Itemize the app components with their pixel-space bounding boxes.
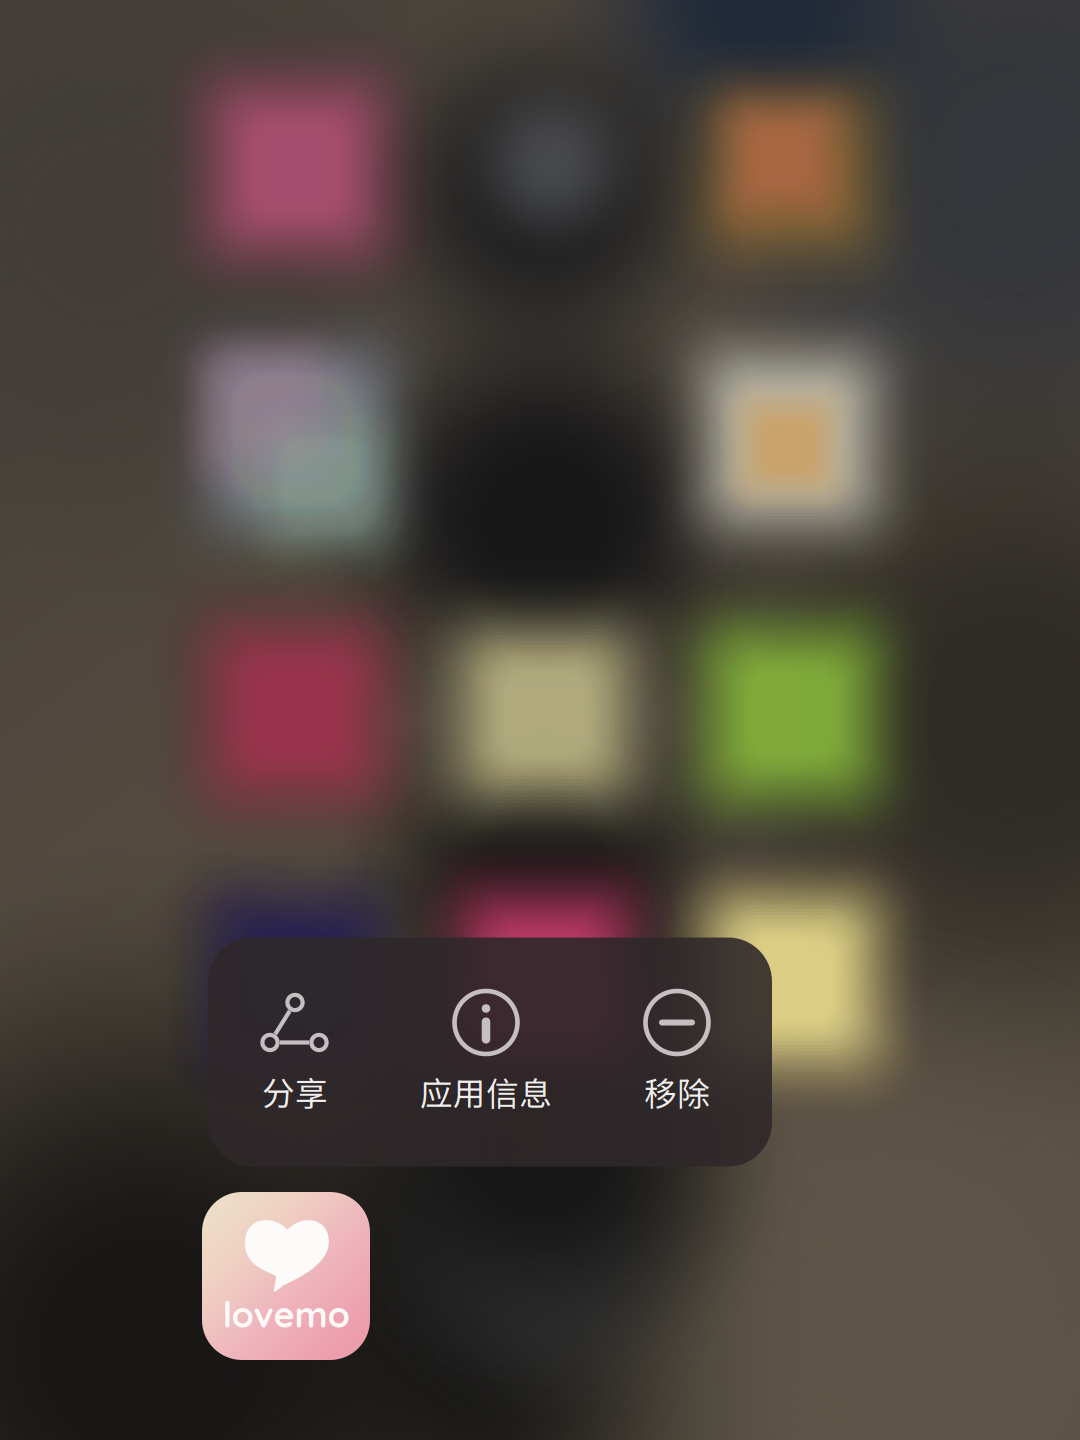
button[interactable]: 分享 [201, 937, 389, 1166]
staticText: 分享 [262, 1068, 328, 1115]
button[interactable]: 移除 [583, 937, 771, 1166]
staticText: 移除 [644, 1068, 710, 1115]
button[interactable]: 应用信息 [392, 937, 580, 1166]
staticText: 应用信息 [420, 1068, 552, 1115]
staticText: lovemo [222, 1291, 349, 1336]
button[interactable]: lovemo [202, 1192, 370, 1360]
